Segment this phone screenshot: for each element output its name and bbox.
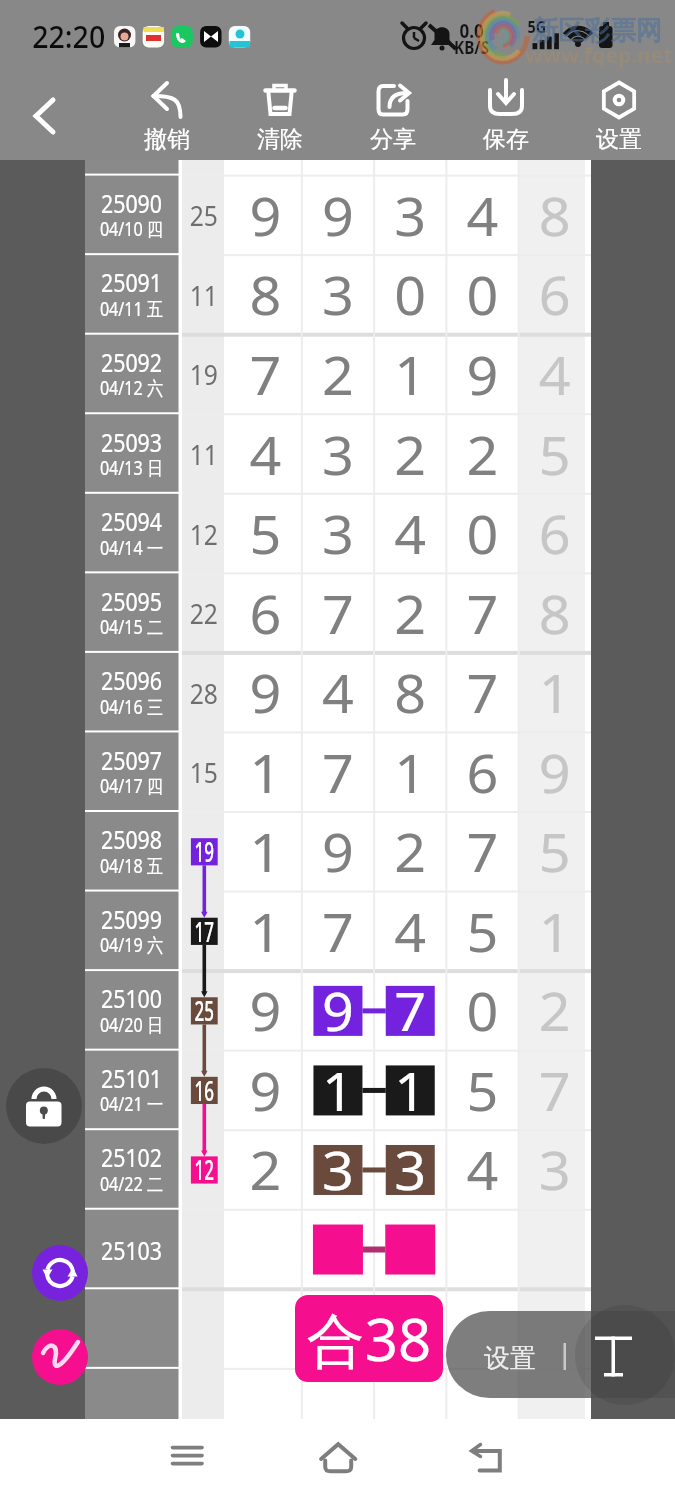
button[interactable]: 25100 [85,971,591,1051]
button[interactable]: Back [12,82,74,142]
button[interactable]: 分享 [343,76,443,152]
button[interactable]: 25098 [85,812,591,892]
button[interactable]: Home [288,1428,388,1492]
button[interactable]: 25099 [85,892,591,972]
button[interactable]: Refresh [32,1245,88,1301]
button[interactable]: 25093 [85,414,591,494]
button[interactable]: 撤销 [117,76,217,152]
button[interactable]: 设置 [569,76,669,152]
button[interactable]: 25103 [85,1210,591,1290]
button[interactable]: 25090 [85,176,591,256]
button[interactable]: 25091 [85,255,591,335]
button[interactable]: 25094 [85,494,591,574]
button[interactable]: 设置 [475,1342,545,1370]
button[interactable]: Recent apps [137,1428,237,1492]
button[interactable]: 25097 [85,732,591,812]
button[interactable]: 25101 [85,1051,591,1131]
button[interactable]: 25095 [85,573,591,653]
staticText: 清除 [230,125,330,154]
staticText: 保存 [456,125,556,154]
button[interactable]: 清除 [230,76,330,152]
button[interactable]: 25092 [85,335,591,415]
button[interactable]: 保存 [456,76,556,152]
staticText: 设置 [475,1342,545,1370]
button[interactable]: 25096 [85,653,591,733]
button[interactable]: Lock [6,1068,82,1144]
button[interactable]: Back [435,1428,535,1492]
staticText: 合38 [295,1299,443,1378]
button[interactable] [446,1311,675,1398]
button[interactable]: Signature [32,1329,88,1385]
staticText: 分享 [343,125,443,154]
staticText: 撤销 [117,125,217,154]
button[interactable]: 25102 [85,1130,591,1210]
button[interactable]: 合38 [295,1295,443,1382]
staticText: 设置 [569,125,669,154]
button[interactable]: Text tool [575,1305,675,1405]
